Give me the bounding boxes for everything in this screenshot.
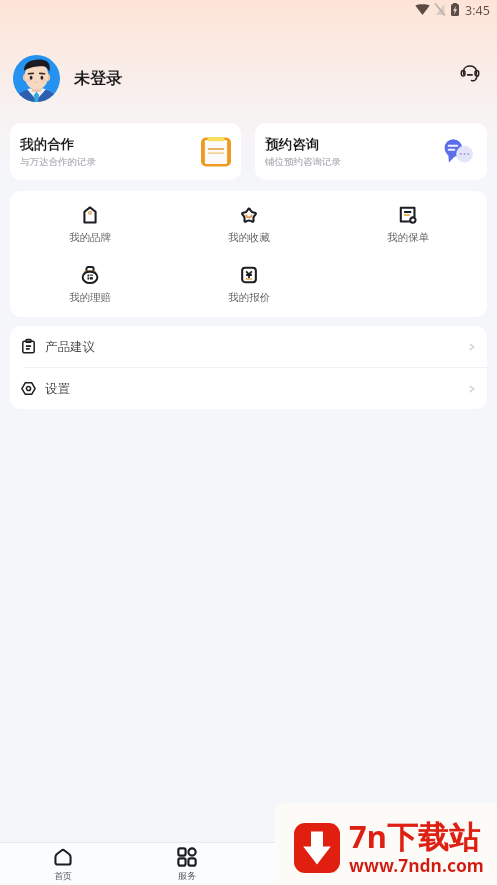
button[interactable]: 消息 [249, 843, 373, 885]
button[interactable]: 预约咨询 [255, 123, 487, 180]
staticText: 我的保单 [387, 231, 429, 244]
staticText: 我的收藏 [228, 231, 270, 244]
button[interactable]: 未登录 [74, 69, 122, 89]
staticText: 我的理赔 [69, 291, 111, 304]
staticText: 服务 [178, 870, 196, 881]
button[interactable]: 产品建议 [10, 326, 487, 367]
button[interactable]: Customer service [456, 58, 484, 86]
staticText: 消息 [302, 870, 320, 881]
staticText: 与万达合作的记录 [20, 156, 96, 168]
staticText: 7n下载站 [349, 815, 480, 857]
button[interactable]: 首页 [0, 843, 125, 885]
button[interactable]: 我的理赔 [10, 266, 169, 304]
button[interactable]: 我的合作 [10, 123, 241, 180]
staticText: 产品建议 [45, 339, 95, 355]
button[interactable]: 我的品牌 [10, 206, 169, 244]
button[interactable]: 我的报价 [169, 266, 328, 304]
staticText: www.7ndn.com [349, 853, 484, 877]
staticText: 3:45 [465, 2, 490, 19]
staticText: 首页 [54, 870, 72, 881]
button[interactable]: 设置 [10, 368, 487, 409]
staticText: 我的品牌 [69, 231, 111, 244]
button[interactable]: 我的收藏 [169, 206, 328, 244]
staticText: 铺位预约咨询记录 [265, 156, 341, 168]
staticText: 我的合作 [20, 136, 74, 153]
button[interactable]: 我的 [373, 843, 497, 885]
staticText: 设置 [45, 381, 70, 397]
button[interactable]: Profile avatar [13, 55, 60, 102]
staticText: 预约咨询 [265, 136, 319, 153]
staticText: 我的 [426, 870, 444, 881]
button[interactable]: 我的保单 [328, 206, 487, 244]
staticText: 我的报价 [228, 291, 270, 304]
button[interactable]: 服务 [125, 843, 249, 885]
